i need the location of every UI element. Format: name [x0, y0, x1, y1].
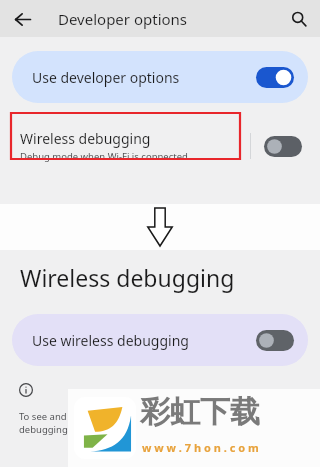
button[interactable]: Wireless debugging: [12, 117, 308, 175]
staticText: Wireless debugging: [20, 129, 151, 148]
staticText: Use developer options: [32, 68, 256, 87]
staticText: Use wireless debugging: [32, 331, 256, 350]
staticText: Debug mode when Wi-Fi is connected: [20, 150, 188, 163]
staticText: w w w . 7 h o n . c o m: [142, 440, 259, 455]
staticText: 彩虹下载: [140, 393, 260, 431]
staticText: Wireless debugging: [20, 262, 235, 293]
button[interactable]: Use developer options: [12, 51, 308, 103]
button[interactable]: Back: [8, 5, 36, 33]
button[interactable]: Search: [286, 6, 312, 32]
staticText: Developer options: [58, 9, 188, 29]
staticText: To see and use available devices, turn o…: [19, 410, 239, 436]
button[interactable]: Use wireless debugging: [12, 314, 308, 366]
